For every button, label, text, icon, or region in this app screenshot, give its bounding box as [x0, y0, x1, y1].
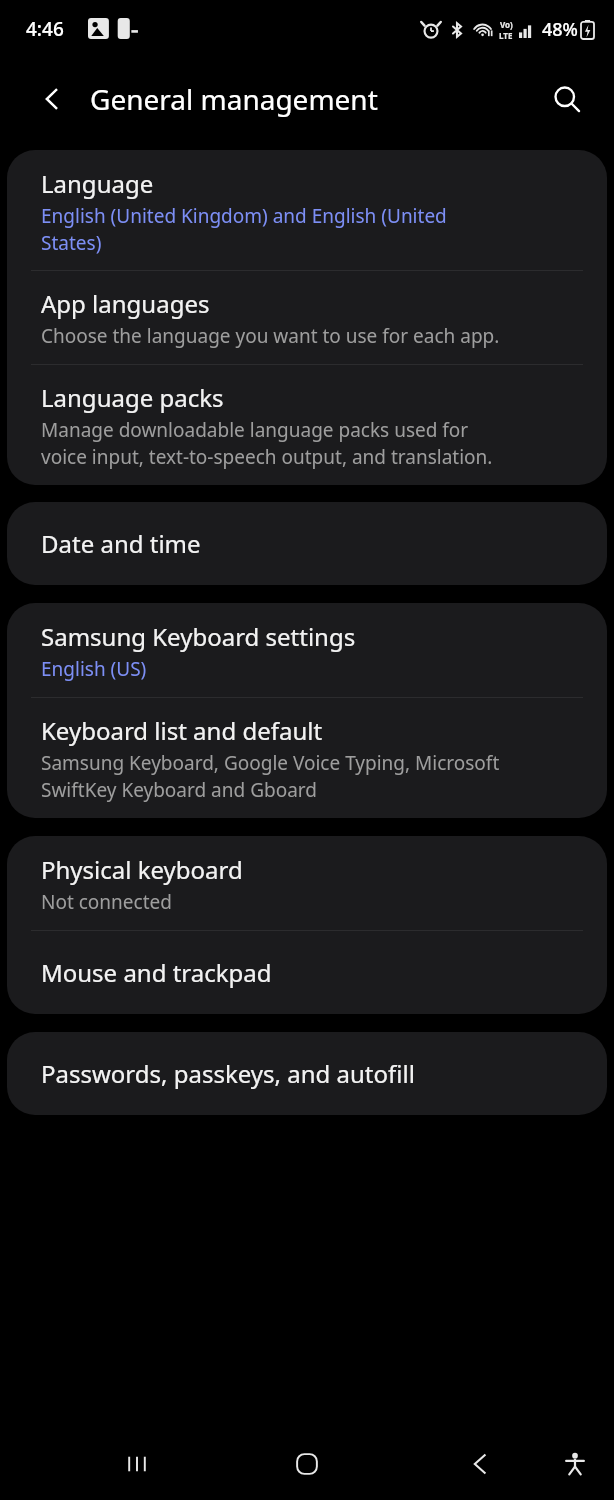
button[interactable]: Passwords, passkeys, and autofill: [7, 1032, 607, 1115]
button[interactable]: Back: [28, 75, 76, 123]
staticText: English (United Kingdom) and English (Un…: [41, 203, 447, 256]
button[interactable]: Samsung Keyboard settings: [7, 603, 607, 697]
button[interactable]: Recents: [107, 1434, 167, 1494]
staticText: LTE: [499, 30, 513, 41]
staticText: Choose the language you want to use for …: [41, 323, 500, 349]
staticText: Physical keyboard: [41, 853, 243, 886]
staticText: Language: [41, 167, 154, 200]
staticText: 48%: [542, 17, 578, 42]
button[interactable]: Mouse and trackpad: [7, 931, 607, 1014]
staticText: Not connected: [41, 889, 172, 915]
staticText: Samsung Keyboard, Google Voice Typing, M…: [41, 750, 500, 803]
staticText: English (US): [41, 656, 147, 682]
staticText: Passwords, passkeys, and autofill: [41, 1057, 415, 1090]
button[interactable]: Accessibility: [545, 1434, 605, 1494]
button[interactable]: Back: [450, 1434, 510, 1494]
staticText: Vo): [500, 19, 513, 30]
staticText: Samsung Keyboard settings: [41, 620, 356, 653]
staticText: App languages: [41, 287, 210, 320]
button[interactable]: Keyboard list and default: [7, 698, 607, 818]
staticText: General management: [90, 80, 378, 118]
button[interactable]: Language: [7, 150, 607, 270]
staticText: Language packs: [41, 381, 224, 414]
button[interactable]: Language packs: [7, 365, 607, 485]
staticText: 4:46: [26, 16, 64, 42]
staticText: Manage downloadable language packs used …: [41, 417, 493, 470]
button[interactable]: App languages: [7, 271, 607, 364]
staticText: Mouse and trackpad: [41, 956, 272, 989]
button[interactable]: Home: [277, 1434, 337, 1494]
button[interactable]: Date and time: [7, 502, 607, 585]
staticText: Date and time: [41, 527, 201, 560]
button[interactable]: Physical keyboard: [7, 836, 607, 930]
button[interactable]: Search: [542, 74, 592, 124]
staticText: Keyboard list and default: [41, 714, 323, 747]
